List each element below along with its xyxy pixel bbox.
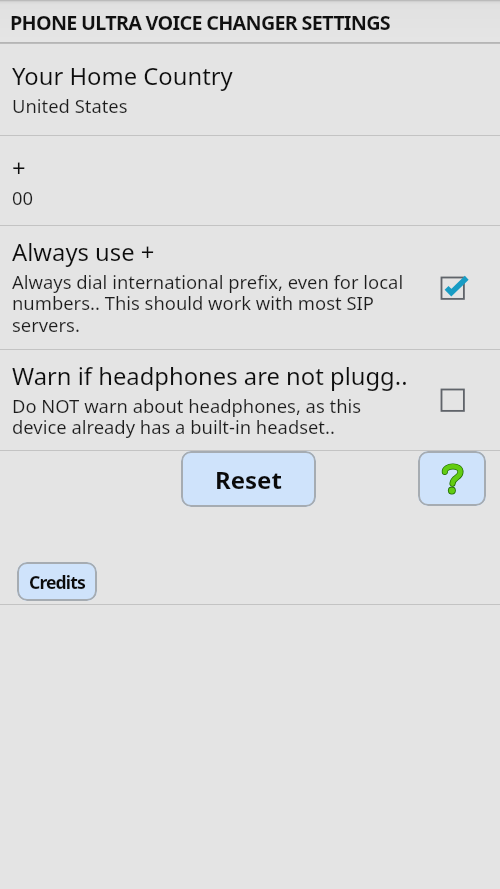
button[interactable]: Always use + xyxy=(0,226,500,349)
staticText: + xyxy=(12,152,26,184)
button[interactable]: Checkbox checked xyxy=(440,274,468,302)
button[interactable]: Help xyxy=(418,451,486,506)
staticText: PHONE ULTRA VOICE CHANGER SETTINGS xyxy=(10,9,390,36)
button[interactable]: Reset xyxy=(181,451,316,507)
staticText: Your Home Country xyxy=(12,60,233,92)
staticText: Always dial international prefix, even f… xyxy=(12,269,412,338)
staticText: Credits xyxy=(29,570,85,594)
button[interactable]: + xyxy=(0,136,500,225)
button[interactable]: Warn if headphones are not plugg.. xyxy=(0,350,500,450)
staticText: Reset xyxy=(215,463,282,496)
staticText: United States xyxy=(12,93,128,118)
button[interactable]: Your Home Country xyxy=(0,44,500,135)
staticText: Always use + xyxy=(12,236,155,268)
staticText: Warn if headphones are not plugg.. xyxy=(12,360,408,392)
button[interactable]: Checkbox unchecked xyxy=(440,386,468,414)
staticText: 00 xyxy=(12,185,34,210)
staticText: Do NOT warn about headphones, as this de… xyxy=(12,393,412,440)
button[interactable]: Credits xyxy=(17,562,97,601)
